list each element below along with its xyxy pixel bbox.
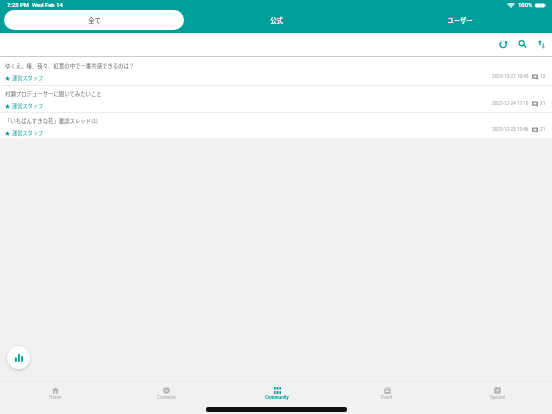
button[interactable]: Poll — [7, 346, 30, 369]
staticText: 運営スタッフ — [12, 129, 44, 137]
staticText: 村瀬プロデューサーに聞いてみたいこと — [5, 90, 102, 98]
staticText: 全て — [88, 16, 101, 25]
button[interactable]: Community — [222, 382, 332, 403]
staticText: Community — [265, 395, 289, 400]
button[interactable]: ゆくえ、椿、夜々、紅葉の中で一番共感できるのは？ — [0, 57, 552, 85]
staticText: 21 — [540, 127, 546, 133]
staticText: Wed Feb 14 — [32, 2, 63, 9]
button[interactable]: ユーザー — [368, 10, 552, 30]
button[interactable]: Sort — [532, 35, 551, 54]
button[interactable]: 全て — [4, 10, 184, 30]
staticText: Event — [381, 395, 393, 400]
button[interactable]: 「いちばんすきな花」雑談スレッド(1) — [0, 113, 552, 138]
button[interactable]: Search — [513, 35, 532, 54]
staticText: Special — [490, 395, 505, 400]
button[interactable]: Special — [442, 382, 552, 403]
staticText: 公式 — [270, 16, 283, 25]
button[interactable]: Contents — [111, 382, 222, 403]
staticText: 100% — [518, 2, 533, 9]
button[interactable]: Home — [0, 382, 111, 403]
staticText: 運営スタッフ — [12, 102, 44, 110]
button[interactable]: 公式 — [184, 10, 368, 30]
staticText: 12 — [540, 74, 546, 80]
staticText: 運営スタッフ — [12, 74, 44, 82]
staticText: Contents — [157, 395, 176, 400]
staticText: 21 — [540, 101, 546, 107]
staticText: 「いちばんすきな花」雑談スレッド(1) — [5, 117, 98, 125]
button[interactable]: Event — [332, 382, 442, 403]
staticText: ユーザー — [447, 16, 473, 25]
button[interactable]: 村瀬プロデューサーに聞いてみたいこと — [0, 86, 552, 112]
staticText: ゆくえ、椿、夜々、紅葉の中で一番共感できるのは？ — [5, 62, 135, 70]
staticText: 7:25 PM — [7, 2, 29, 9]
staticText: 2023-12-22 13:46 — [492, 127, 529, 133]
button[interactable]: Refresh — [494, 35, 513, 54]
staticText: 2023-12-24 17:10 — [492, 101, 529, 107]
staticText: Home — [49, 395, 62, 400]
staticText: 2023-12-27 10:45 — [492, 74, 529, 80]
